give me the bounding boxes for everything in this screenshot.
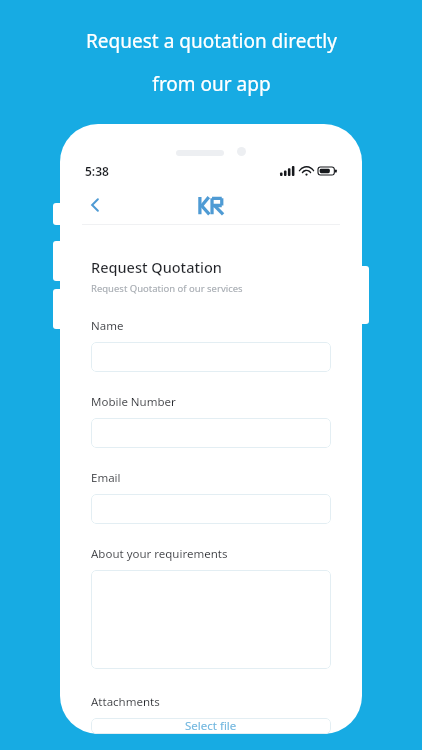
staticText: Request Quotation of our services: [91, 282, 243, 295]
staticText: Name: [91, 318, 124, 334]
staticText: Email: [91, 470, 121, 486]
staticText: Request a quotation directly: [86, 28, 337, 54]
button[interactable]: Select file: [91, 718, 331, 734]
button[interactable]: [91, 418, 331, 448]
button[interactable]: [91, 494, 331, 524]
staticText: from our app: [152, 71, 271, 97]
staticText: Request Quotation: [91, 257, 222, 277]
staticText: 5:38: [85, 163, 109, 179]
button[interactable]: [91, 342, 331, 372]
button[interactable]: [91, 570, 331, 669]
staticText: Mobile Number: [91, 394, 176, 410]
staticText: About your requirements: [91, 546, 228, 562]
button[interactable]: Back: [80, 190, 110, 220]
staticText: Select file: [185, 718, 237, 734]
staticText: Attachments: [91, 694, 160, 710]
